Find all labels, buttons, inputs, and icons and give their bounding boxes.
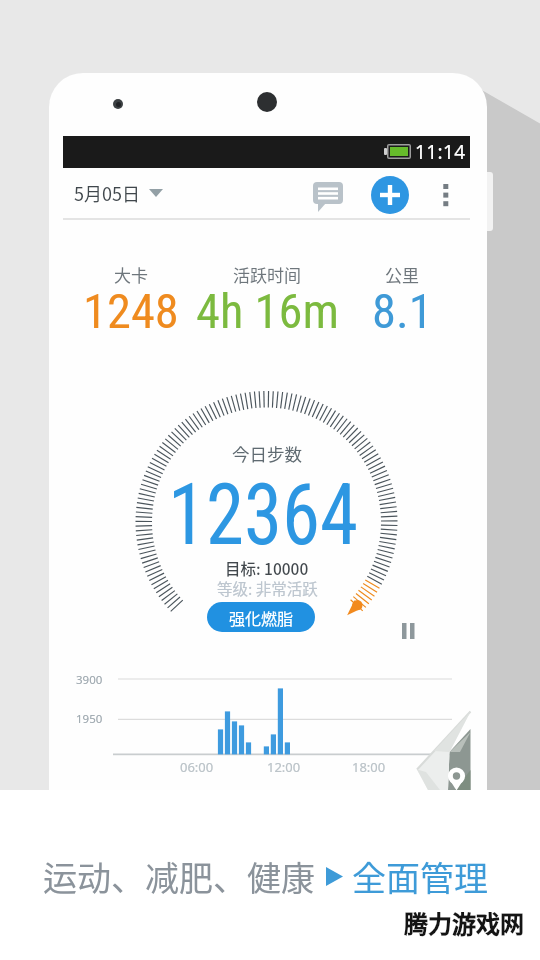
button[interactable]: 全面管理 [352, 852, 488, 901]
staticText: 目标: 10000 [225, 557, 309, 579]
staticText: 公里 [385, 262, 419, 287]
staticText: 8.1 [372, 283, 433, 340]
staticText: 12:00 [267, 758, 301, 776]
staticText: 3900 [76, 672, 103, 688]
staticText: 11:14 [415, 139, 466, 165]
staticText: 1248 [83, 283, 179, 340]
staticText: 活跃时间 [233, 262, 301, 287]
staticText: 今日步数 [232, 441, 302, 466]
staticText: 等级: 非常活跃 [217, 577, 318, 599]
staticText: 1950 [76, 711, 103, 727]
staticText: 18:00 [352, 758, 386, 776]
button[interactable] [436, 176, 456, 216]
staticText: 06:00 [180, 758, 214, 776]
button[interactable]: 强化燃脂 [207, 602, 315, 632]
staticText: 5月05日 [74, 180, 140, 206]
button[interactable]: 5月05日 [70, 172, 170, 214]
staticText: 4h 16m [196, 283, 339, 340]
button[interactable] [308, 177, 348, 215]
button[interactable] [370, 175, 410, 215]
staticText: 运动、减肥、健康 [43, 852, 315, 901]
staticText: 大卡 [114, 262, 148, 287]
button[interactable] [396, 616, 422, 644]
staticText: 12364 [168, 466, 359, 554]
staticText: 强化燃脂 [229, 606, 294, 629]
staticText: 腾力游戏网 [404, 905, 524, 940]
staticText: 全面管理 [352, 852, 488, 901]
